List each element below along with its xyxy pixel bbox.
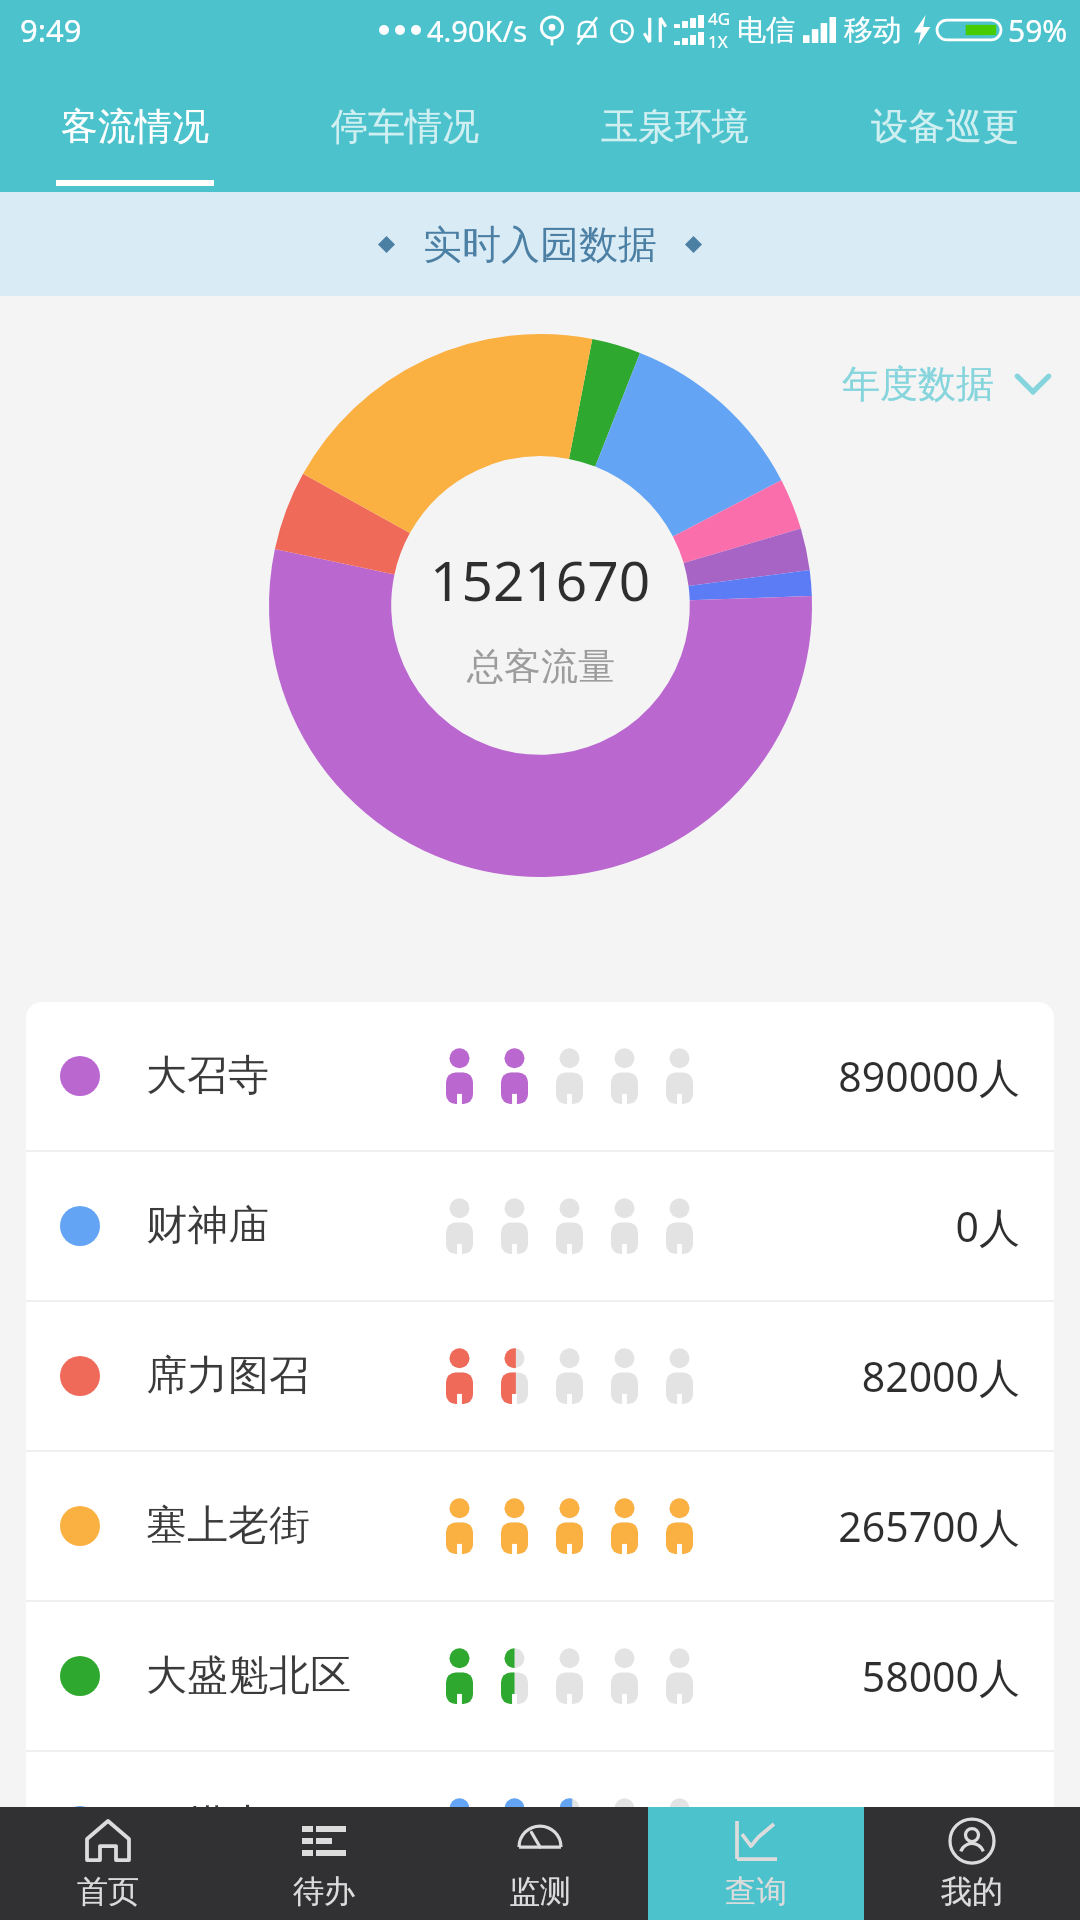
staticText: 监测 (509, 1872, 571, 1911)
staticText: 客流情况 (61, 103, 209, 150)
button[interactable]: 财神庙 (26, 1152, 1054, 1300)
button[interactable]: 设备巡更 (810, 60, 1080, 192)
button[interactable]: 玉泉环境 (540, 60, 810, 192)
button[interactable]: 监测 (432, 1807, 648, 1920)
staticText: 大召寺 (146, 1050, 269, 1102)
staticText: 移动 (844, 12, 902, 49)
staticText: 查询 (725, 1872, 787, 1911)
staticText: 大盛魁北区 (146, 1650, 351, 1702)
staticText: 财神庙 (146, 1200, 269, 1252)
staticText: 133970人 (838, 1798, 1020, 1854)
staticText: 0人 (955, 1198, 1020, 1254)
button[interactable]: 塞上老街 (26, 1452, 1054, 1600)
staticText: 1521670 (430, 542, 651, 617)
staticText: 电信 (737, 12, 795, 49)
staticText: 265700人 (838, 1498, 1020, 1554)
staticText: 890000人 (838, 1048, 1020, 1104)
staticText: 总客流量 (467, 643, 615, 690)
staticText: 82000人 (861, 1348, 1020, 1404)
button[interactable]: 席力图召 (26, 1302, 1054, 1450)
staticText: 首页 (77, 1872, 139, 1911)
button[interactable]: 大召寺 (26, 1002, 1054, 1150)
staticText: 1X (708, 30, 728, 53)
staticText: 58000人 (861, 1648, 1020, 1704)
staticText: 玉泉环境 (601, 103, 749, 150)
staticText: 设备巡更 (871, 103, 1019, 150)
button[interactable]: 查询 (648, 1807, 864, 1920)
button[interactable]: 客流情况 (0, 60, 270, 192)
button[interactable]: 首页 (0, 1807, 216, 1920)
staticText: 我的 (941, 1872, 1003, 1911)
staticText: 五塔寺 (146, 1800, 269, 1852)
button[interactable]: 大盛魁北区 (26, 1602, 1054, 1750)
staticText: 4G (708, 7, 731, 30)
button[interactable]: 待办 (216, 1807, 432, 1920)
button[interactable]: 五塔寺 (26, 1752, 1054, 1900)
staticText: 待办 (293, 1872, 355, 1911)
staticText: 年度数据 (842, 360, 994, 408)
staticText: 9:49 (20, 9, 82, 51)
staticText: 塞上老街 (146, 1500, 310, 1552)
button[interactable]: 停车情况 (270, 60, 540, 192)
button[interactable]: 我的 (864, 1807, 1080, 1920)
staticText: 停车情况 (331, 103, 479, 150)
staticText: 4.90K/s (427, 11, 528, 50)
staticText: 实时入园数据 (423, 220, 657, 269)
button[interactable]: 年度数据 (834, 352, 1062, 416)
staticText: 席力图召 (146, 1350, 310, 1402)
staticText: 59% (1008, 10, 1068, 51)
